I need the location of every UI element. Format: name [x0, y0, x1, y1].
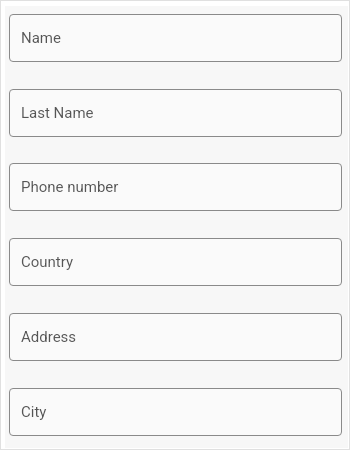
button[interactable]: City — [9, 388, 342, 436]
button[interactable]: Name — [9, 14, 342, 62]
staticText: Phone number — [21, 178, 119, 196]
staticText: Country — [21, 253, 74, 271]
button[interactable]: Country — [9, 238, 342, 286]
staticText: Last Name — [21, 104, 94, 122]
button[interactable]: Phone number — [9, 163, 342, 211]
staticText: City — [21, 403, 47, 421]
staticText: Address — [21, 328, 77, 346]
button[interactable]: Last Name — [9, 89, 342, 137]
staticText: Name — [21, 29, 61, 47]
button[interactable]: Address — [9, 313, 342, 361]
